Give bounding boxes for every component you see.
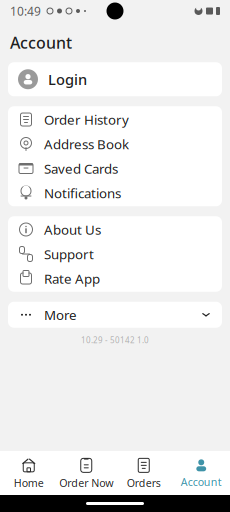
staticText: About Us	[44, 221, 101, 238]
button[interactable]: Account	[172, 452, 230, 494]
button[interactable]: Home	[0, 451, 57, 495]
staticText: 10:49	[10, 3, 41, 19]
button[interactable]: More	[8, 302, 222, 328]
staticText: Rate App	[44, 270, 100, 287]
staticText: Account	[10, 32, 72, 53]
button[interactable]: Order Now	[57, 451, 115, 495]
staticText: More	[44, 306, 77, 324]
button[interactable]: Order History	[8, 107, 222, 132]
button[interactable]: Address Book	[8, 132, 222, 156]
staticText: Account	[181, 475, 222, 489]
button[interactable]: Login	[8, 62, 222, 96]
button[interactable]: Support	[8, 242, 222, 266]
staticText: Notifications	[44, 184, 121, 202]
staticText: Orders	[127, 476, 161, 490]
staticText: Support	[44, 245, 94, 263]
button[interactable]: About Us	[8, 217, 222, 242]
staticText: Order History	[44, 111, 129, 128]
staticText: 10.29 - 50142 1.0	[81, 335, 149, 345]
staticText: Login	[48, 69, 87, 89]
button[interactable]: Orders	[115, 451, 172, 495]
staticText: Order Now	[59, 476, 113, 490]
staticText: Saved Cards	[44, 160, 118, 177]
button[interactable]: Notifications	[8, 181, 222, 205]
button[interactable]: Rate App	[8, 266, 222, 291]
staticText: Home	[14, 476, 44, 490]
staticText: Address Book	[44, 135, 129, 153]
button[interactable]: Saved Cards	[8, 156, 222, 181]
